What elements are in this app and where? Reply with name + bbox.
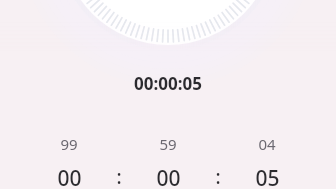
staticText: 04 xyxy=(258,134,276,154)
button[interactable]: Set seconds xyxy=(241,132,293,188)
staticText: : xyxy=(116,164,122,188)
button[interactable]: 00 xyxy=(43,164,95,188)
staticText: 99 xyxy=(60,134,78,154)
staticText: 00:00:05 xyxy=(134,72,202,92)
staticText: 59 xyxy=(159,134,177,154)
button[interactable]: Set hours xyxy=(43,132,95,188)
other: Elapsed time 00 hours 00 minutes 05 seco… xyxy=(0,72,336,92)
staticText: 00 xyxy=(156,164,181,188)
staticText: : xyxy=(215,164,221,188)
staticText: 05 xyxy=(255,164,280,188)
button[interactable]: 00 xyxy=(142,164,194,188)
button[interactable]: Set minutes xyxy=(142,132,194,188)
staticText: 00 xyxy=(57,164,82,188)
button[interactable]: 05 xyxy=(241,164,293,188)
